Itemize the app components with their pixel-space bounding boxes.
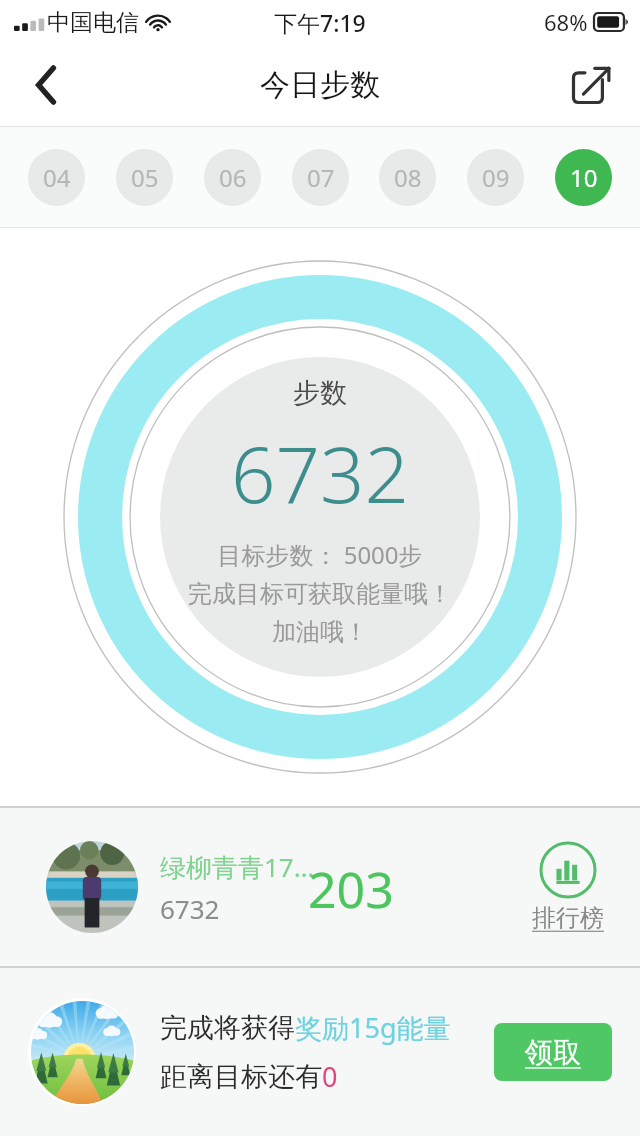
staticText: 中国电信	[47, 8, 139, 37]
staticText: 6732	[160, 891, 220, 926]
staticText: 10	[570, 161, 598, 194]
button[interactable]: 05	[116, 149, 173, 206]
button[interactable]: Back	[18, 56, 76, 114]
button[interactable]: 04	[28, 149, 85, 206]
button[interactable]: 07	[292, 149, 349, 206]
staticText: 步数	[293, 376, 347, 410]
button[interactable]: 10	[555, 149, 612, 206]
staticText: 06	[219, 161, 247, 194]
staticText: 目标步数： 5000步	[217, 538, 423, 571]
staticText: 加油哦！	[272, 617, 368, 647]
staticText: 203	[308, 855, 394, 923]
button[interactable]: 09	[467, 149, 524, 206]
staticText: 下午7:19	[274, 7, 366, 38]
staticText: 完成目标可获取能量哦！	[188, 579, 452, 609]
staticText: 04	[43, 161, 71, 194]
staticText: 距离目标还有	[160, 1060, 322, 1094]
button[interactable]: 08	[379, 149, 436, 206]
staticText: 05	[131, 161, 159, 194]
staticText: 6732	[231, 420, 410, 526]
staticText: 完成将获得	[160, 1011, 295, 1045]
staticText: 奖励15g能量	[295, 1009, 451, 1046]
button[interactable]: Share	[562, 56, 620, 114]
staticText: 07	[307, 161, 335, 194]
staticText: 0	[322, 1058, 338, 1095]
staticText: 68%	[544, 7, 588, 37]
staticText: 领取	[525, 1035, 581, 1070]
button[interactable]: 06	[204, 149, 261, 206]
staticText: 排行榜	[532, 903, 604, 933]
button[interactable]: 领取	[494, 1023, 612, 1081]
staticText: 绿柳青青17….	[160, 849, 322, 885]
staticText: 09	[482, 161, 510, 194]
button[interactable]: 绿柳青青17….	[0, 808, 640, 966]
staticText: 08	[394, 161, 422, 194]
button[interactable]: 排行榜	[526, 841, 610, 933]
staticText: 今日步数	[260, 66, 380, 104]
